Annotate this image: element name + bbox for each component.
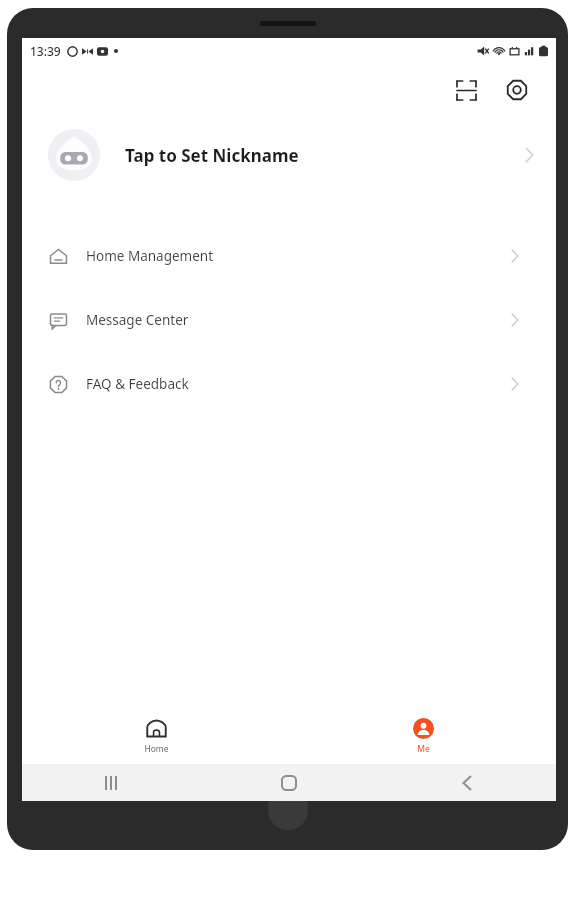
button[interactable]: Scan bbox=[449, 73, 483, 107]
button[interactable]: Home bbox=[271, 765, 307, 801]
button[interactable]: FAQ & Feedback bbox=[22, 352, 556, 416]
staticText: Tap to Set Nickname bbox=[125, 144, 299, 167]
staticText: Message Center bbox=[86, 311, 189, 329]
staticText: Home bbox=[144, 743, 169, 755]
staticText: FAQ & Feedback bbox=[86, 375, 189, 393]
button[interactable]: Tap to Set Nickname bbox=[22, 116, 556, 194]
button[interactable]: Back bbox=[449, 765, 485, 801]
staticText: Home Management bbox=[86, 247, 214, 265]
button[interactable]: Home bbox=[113, 714, 199, 759]
button[interactable]: Me bbox=[380, 714, 466, 759]
button[interactable]: Settings bbox=[500, 73, 534, 107]
button[interactable]: Message Center bbox=[22, 288, 556, 352]
staticText: Me bbox=[417, 743, 430, 755]
button[interactable]: Recents bbox=[93, 765, 129, 801]
button[interactable]: Home Management bbox=[22, 224, 556, 288]
staticText: 13:39 bbox=[30, 43, 61, 59]
